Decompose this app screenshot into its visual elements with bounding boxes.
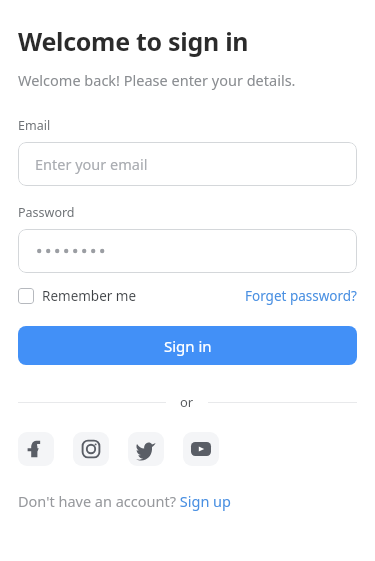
staticText: Sign in: [164, 336, 212, 356]
button[interactable]: Forget password?: [245, 287, 357, 305]
button[interactable]: [18, 229, 357, 273]
staticText: Forget password?: [245, 287, 357, 305]
button[interactable]: Sign in: [18, 326, 357, 365]
staticText: Welcome to sign in: [18, 24, 249, 58]
button[interactable]: Sign in with Facebook: [18, 432, 54, 466]
staticText: Remember me: [42, 287, 137, 305]
button[interactable]: Sign in with YouTube: [183, 432, 219, 466]
button[interactable]: Sign in with Instagram: [73, 432, 109, 466]
button[interactable]: Don't have an account? Sign up: [18, 491, 231, 511]
button[interactable]: Sign in with Twitter: [128, 432, 164, 466]
staticText: Enter your email: [35, 154, 148, 174]
staticText: Password: [18, 204, 75, 221]
button[interactable]: Remember me: [18, 287, 137, 305]
staticText: Email: [18, 117, 51, 134]
staticText: or: [180, 393, 194, 411]
staticText: Welcome back! Please enter your details.: [18, 70, 296, 90]
staticText: Don't have an account? Sign up: [18, 491, 231, 511]
button[interactable]: Enter your email: [18, 142, 357, 186]
